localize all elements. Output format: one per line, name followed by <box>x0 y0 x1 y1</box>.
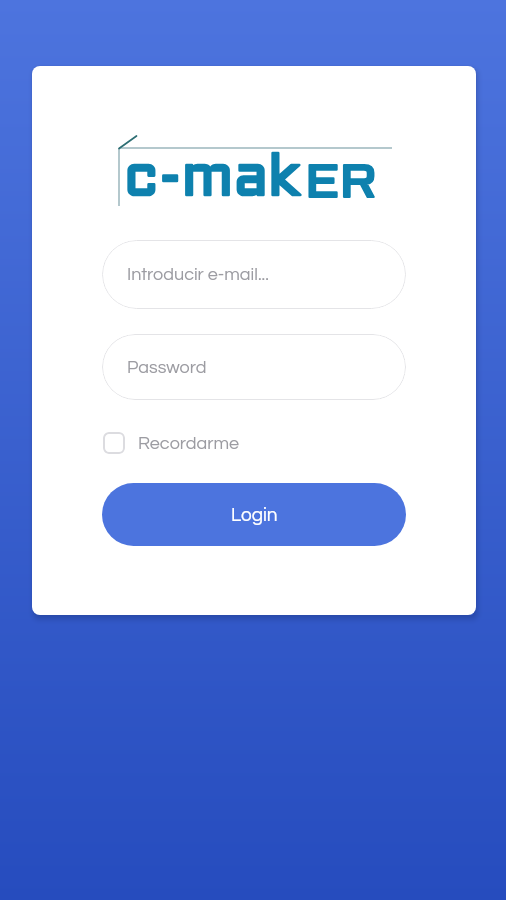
button[interactable]: Login <box>102 483 406 546</box>
staticText: Login <box>231 505 278 525</box>
button[interactable]: Introducir e-mail... <box>102 240 406 309</box>
staticText: ER <box>305 164 378 207</box>
staticText: c-mak <box>124 153 300 207</box>
staticText: c-mak <box>124 153 300 207</box>
button[interactable]: Recordarme <box>99 428 244 458</box>
staticText: Recordarme <box>138 434 240 453</box>
staticText: ER <box>305 164 378 207</box>
button[interactable]: Password <box>102 334 406 400</box>
staticText: Password <box>127 358 207 377</box>
staticText: Introducir e-mail... <box>127 265 269 284</box>
